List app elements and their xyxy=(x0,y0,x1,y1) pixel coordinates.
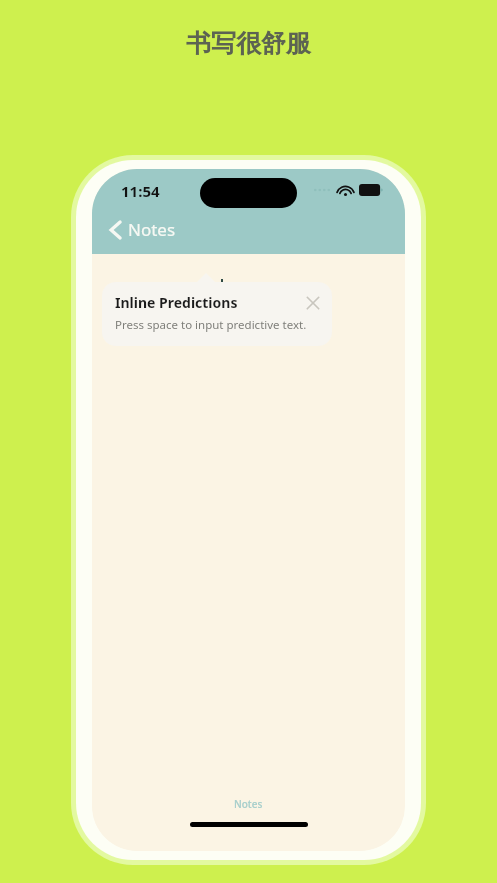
staticText: Write somethi xyxy=(111,278,221,297)
button[interactable]: Write somethi xyxy=(111,278,240,297)
staticText: Notes xyxy=(234,797,263,811)
button[interactable]: Inline Predictions xyxy=(102,282,332,346)
other: Back xyxy=(110,221,121,239)
staticText: ng xyxy=(223,278,240,297)
staticText: 11:54 xyxy=(121,181,160,201)
staticText: Inline Predictions xyxy=(115,293,238,312)
staticText: Press space to input predictive text. xyxy=(115,317,307,333)
staticText: Notes xyxy=(128,218,176,241)
button[interactable]: Back xyxy=(106,215,180,244)
button[interactable]: Dismiss xyxy=(304,294,322,312)
staticText: 书写很舒服 xyxy=(186,28,311,59)
